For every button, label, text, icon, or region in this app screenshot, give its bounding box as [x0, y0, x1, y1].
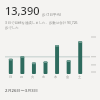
staticText: 土	[78, 75, 82, 79]
staticText: 13,390	[5, 3, 40, 18]
staticText: 2月26日〜3月3日	[5, 88, 38, 94]
staticText: 歩 (1日平均)	[42, 12, 62, 17]
staticText: 火	[31, 75, 35, 79]
staticText: 金	[66, 75, 70, 79]
button[interactable]: 週間歩数グラフ	[5, 34, 98, 82]
staticText: 木	[54, 75, 58, 79]
staticText: 歩でした	[5, 26, 19, 30]
staticText: 3 日で目標を達成しました。歩数は合計 93,726	[5, 20, 78, 25]
staticText: 月	[20, 75, 24, 79]
staticText: 日	[9, 75, 13, 79]
staticText: 水	[42, 75, 46, 79]
